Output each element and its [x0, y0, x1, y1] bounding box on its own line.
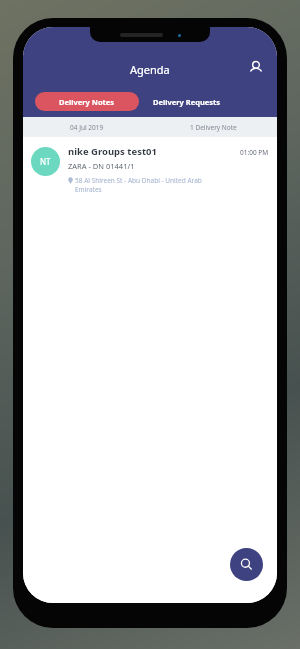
- staticText: 58 Al Shireen St - Abu Dhabi - United Ar…: [75, 176, 205, 194]
- staticText: Agenda: [130, 62, 170, 77]
- button[interactable]: Search: [230, 548, 263, 581]
- staticText: 1 Delivery Note: [190, 123, 237, 132]
- staticText: Delivery Notes: [59, 97, 115, 107]
- staticText: NT: [40, 156, 51, 167]
- staticText: nike Groups test01: [68, 145, 157, 158]
- staticText: ZARA - DN 01441/1: [68, 161, 135, 171]
- button[interactable]: NT: [23, 137, 277, 209]
- staticText: 04 Jul 2019: [70, 123, 104, 132]
- staticText: Delivery Requests: [153, 97, 221, 107]
- staticText: 01:00 PM: [240, 148, 269, 157]
- button[interactable]: Delivery Notes: [35, 92, 139, 111]
- button[interactable]: Delivery Requests: [153, 92, 221, 111]
- button[interactable]: Profile: [243, 55, 269, 81]
